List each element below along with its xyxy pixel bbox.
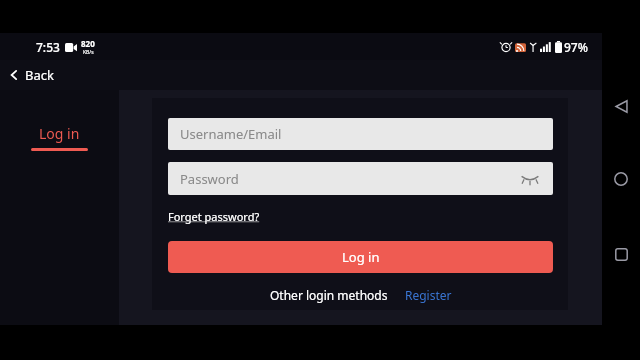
staticText: 820 (81, 38, 95, 49)
button[interactable]: Home (605, 163, 637, 195)
button[interactable]: Username/Email (168, 118, 553, 150)
button[interactable]: Back (605, 90, 637, 122)
button[interactable]: Password (168, 162, 553, 195)
staticText: Back (25, 66, 54, 84)
button[interactable]: Back (0, 60, 602, 90)
staticText: Log in (39, 124, 80, 143)
button[interactable]: Show password (519, 168, 541, 190)
button[interactable]: Log in (23, 122, 96, 153)
button[interactable]: Recent apps (605, 238, 637, 270)
staticText: Username/Email (180, 125, 282, 143)
staticText: Log in (342, 248, 380, 266)
button[interactable]: Register (405, 287, 452, 303)
button[interactable]: Log in (168, 241, 553, 273)
button[interactable]: Forget password? (168, 208, 260, 225)
button[interactable]: Other login methods (270, 287, 388, 303)
staticText: 97% (564, 39, 588, 55)
staticText: Password (180, 170, 239, 188)
staticText: 7:53 (36, 39, 60, 55)
staticText: KB/s (83, 49, 94, 56)
